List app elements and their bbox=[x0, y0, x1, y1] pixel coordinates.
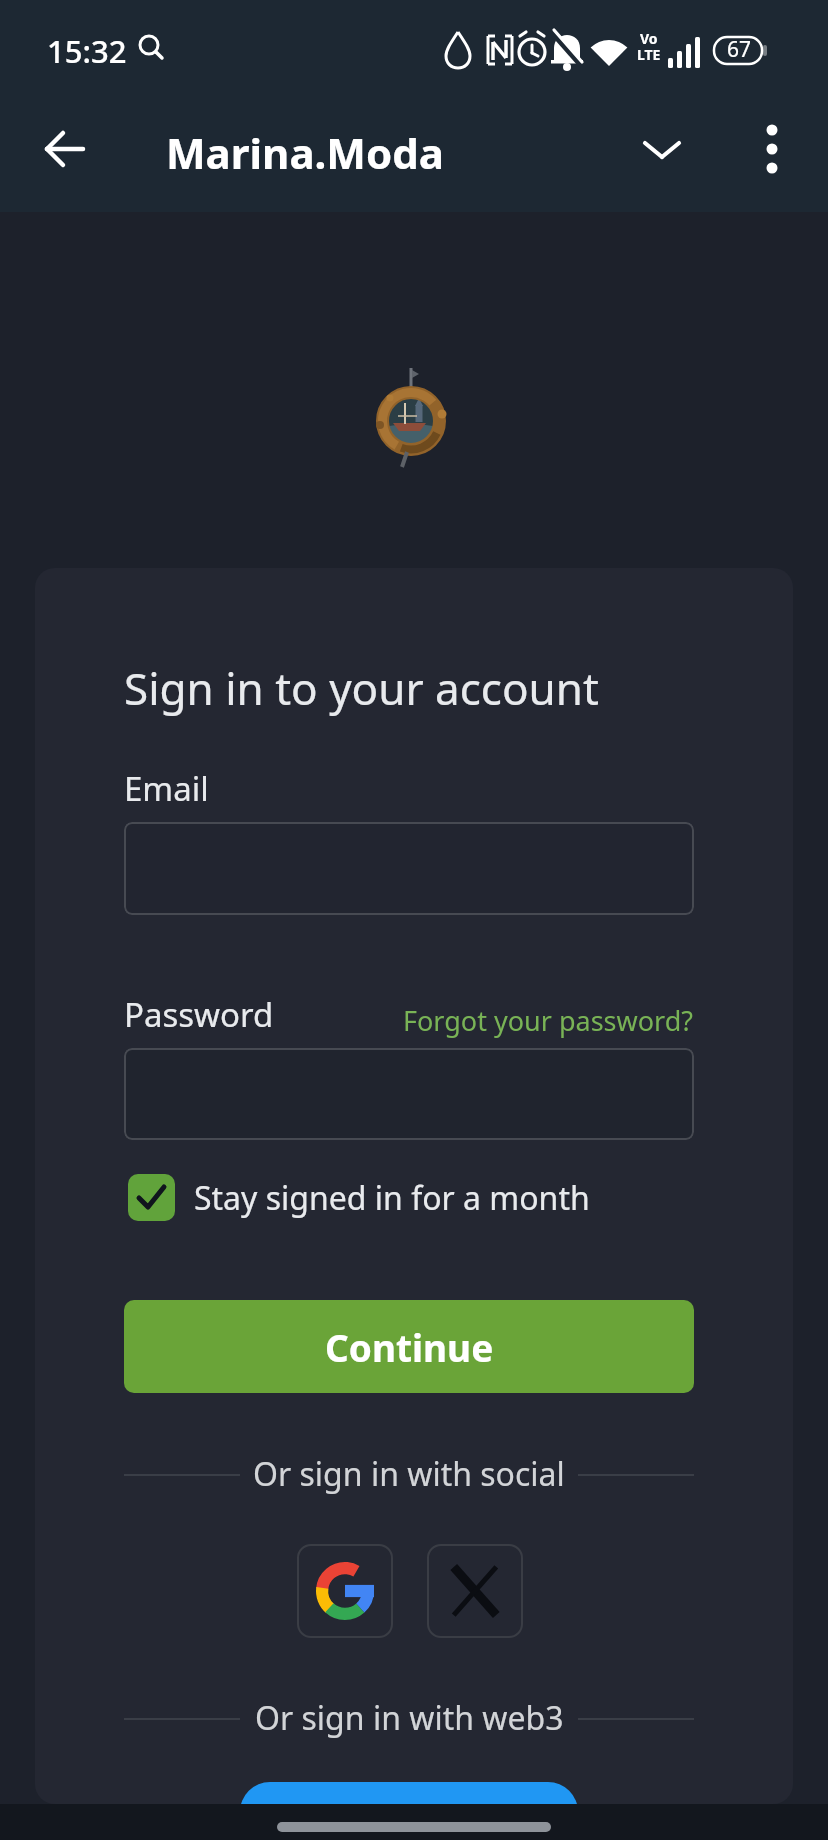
button[interactable]: Continue bbox=[124, 1300, 694, 1393]
staticText: 67 bbox=[727, 35, 752, 64]
staticText: Password bbox=[124, 992, 274, 1037]
button[interactable] bbox=[124, 822, 694, 915]
staticText: Email bbox=[124, 766, 209, 811]
staticText: Or sign in with social bbox=[253, 1452, 565, 1496]
staticText: Continue bbox=[325, 1322, 494, 1372]
staticText: Marina.Moda bbox=[166, 124, 444, 181]
staticText: LTE bbox=[637, 45, 661, 64]
button[interactable] bbox=[240, 1782, 578, 1804]
staticText: Sign in to your account bbox=[124, 658, 599, 718]
button[interactable]: Stay signed in for a month bbox=[128, 1174, 590, 1221]
button[interactable]: Forgot your password? bbox=[403, 1002, 694, 1039]
staticText: 15:32 bbox=[47, 30, 127, 72]
button[interactable] bbox=[427, 1544, 523, 1638]
button[interactable] bbox=[628, 115, 696, 183]
button[interactable] bbox=[297, 1544, 393, 1638]
staticText: Stay signed in for a month bbox=[194, 1176, 590, 1220]
staticText: Vo bbox=[640, 29, 658, 48]
staticText: Or sign in with web3 bbox=[255, 1696, 564, 1740]
button[interactable] bbox=[738, 115, 806, 183]
button[interactable] bbox=[124, 1048, 694, 1140]
button[interactable] bbox=[25, 109, 105, 189]
